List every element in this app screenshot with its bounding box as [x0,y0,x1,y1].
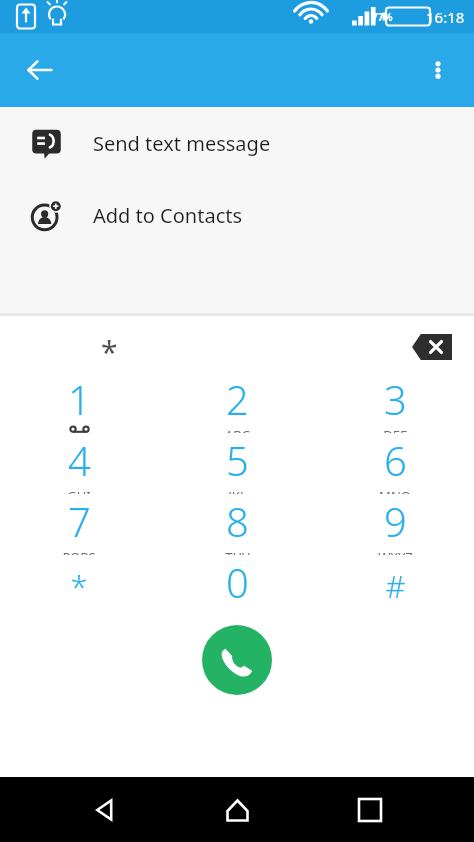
button[interactable]: 7 [0,494,158,555]
staticText: 1 [68,372,91,426]
staticText: MNO [379,487,411,494]
staticText: TUV [225,548,250,555]
staticText: 9 [384,494,407,548]
button[interactable]: More options [414,46,462,94]
staticText: 0 [226,555,249,609]
button[interactable]: 8 [158,494,316,555]
staticText: 6 [384,433,407,487]
button[interactable]: Delete [406,321,458,373]
button[interactable]: Back [14,44,66,96]
staticText: Add to Contacts [93,202,243,229]
staticText: ABC [225,426,250,433]
staticText: 8 [226,494,249,548]
button[interactable]: 3 [316,372,474,433]
button[interactable]: Add to Contacts [0,180,474,251]
button[interactable]: Back [75,781,133,839]
button[interactable]: Recents [341,781,399,839]
staticText: JKL [228,487,247,494]
button[interactable]: Send text message [0,107,474,180]
staticText: 16:18 [426,7,465,27]
staticText: DEF [383,426,407,433]
button[interactable]: # [316,555,474,617]
button[interactable]: 4 [0,433,158,494]
staticText: 2 [226,372,249,426]
button[interactable]: 6 [316,433,474,494]
staticText: 4 [68,433,91,487]
staticText: 77% [372,10,393,24]
button[interactable]: 1 [0,372,158,433]
staticText: * [101,331,118,372]
staticText: GHI [67,487,91,494]
staticText: 3 [384,372,407,426]
staticText: 5 [226,433,249,487]
button[interactable]: 0 [158,555,316,617]
staticText: WXYZ [378,548,413,555]
staticText: Send text message [93,130,271,157]
staticText: * [70,565,88,607]
staticText: # [385,565,406,607]
button[interactable]: 2 [158,372,316,433]
button[interactable]: * [0,555,158,617]
button[interactable]: Call [202,625,272,695]
staticText: 7 [68,494,91,548]
staticText: PQRS [62,548,96,555]
button[interactable]: 5 [158,433,316,494]
button[interactable]: Home [208,781,266,839]
button[interactable]: 9 [316,494,474,555]
